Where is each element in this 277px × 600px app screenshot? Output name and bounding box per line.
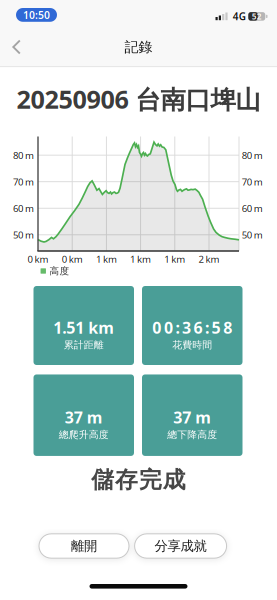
staticText: 1.51 km	[53, 317, 114, 338]
staticText: 花費時間	[172, 339, 212, 351]
staticText: 52	[252, 11, 262, 22]
staticText: 儲存完成	[91, 466, 186, 494]
staticText: 記錄	[124, 38, 152, 56]
staticText: 60 m	[13, 202, 34, 215]
staticText: 10:50	[23, 8, 50, 22]
staticText: 70 m	[242, 175, 263, 188]
staticText: 0 km	[62, 252, 83, 266]
staticText: 累計距離	[64, 339, 104, 351]
staticText: 總下降高度	[167, 428, 217, 441]
staticText: 1 km	[96, 252, 117, 266]
button[interactable]: 分享成就	[135, 534, 227, 558]
staticText: 2 km	[198, 252, 219, 266]
staticText: 50 m	[242, 228, 263, 241]
staticText: 分享成就	[155, 538, 207, 554]
staticText: 80 m	[242, 149, 263, 162]
staticText: 37 m	[173, 406, 211, 428]
staticText: 1 km	[164, 252, 185, 266]
staticText: 60 m	[242, 202, 263, 215]
button[interactable]: 返回通話	[16, 8, 57, 22]
button[interactable]: 離開	[39, 534, 129, 558]
staticText: 20250906 台南口埤山	[16, 82, 260, 116]
staticText: 0 km	[27, 252, 48, 266]
staticText: 37 m	[65, 406, 103, 428]
button[interactable]: 返回	[12, 39, 21, 54]
staticText: 高度	[49, 265, 69, 277]
staticText: 離開	[71, 538, 97, 554]
staticText: 1 km	[130, 252, 151, 266]
staticText: 00:36:58	[152, 317, 232, 338]
staticText: 總爬升高度	[59, 428, 109, 441]
staticText: 70 m	[13, 175, 34, 188]
staticText: 50 m	[13, 228, 34, 241]
staticText: 80 m	[13, 149, 34, 162]
staticText: 4G	[233, 10, 246, 23]
